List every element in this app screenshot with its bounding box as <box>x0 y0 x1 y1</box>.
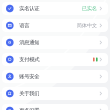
staticText: 实名认证 <box>19 5 39 12</box>
staticText: 账号安全 <box>19 73 39 80</box>
button[interactable]: 语言 <box>2 19 108 32</box>
staticText: 支付模式 <box>19 56 39 63</box>
staticText: 简体中文 <box>77 22 97 29</box>
button[interactable]: 支付模式 <box>2 53 108 66</box>
staticText: 关于我们 <box>19 90 39 97</box>
staticText: 更多设置 <box>19 107 39 110</box>
staticText: 消息通知 <box>19 39 39 46</box>
button[interactable]: 账号安全 <box>2 70 108 83</box>
staticText: 语言 <box>19 22 29 29</box>
button[interactable]: 实名认证 <box>2 2 108 15</box>
button[interactable]: 更多设置 <box>2 104 108 110</box>
button[interactable]: 关于我们 <box>2 87 108 100</box>
staticText: 已实名 <box>82 5 97 12</box>
button[interactable]: 消息通知 <box>2 36 108 49</box>
